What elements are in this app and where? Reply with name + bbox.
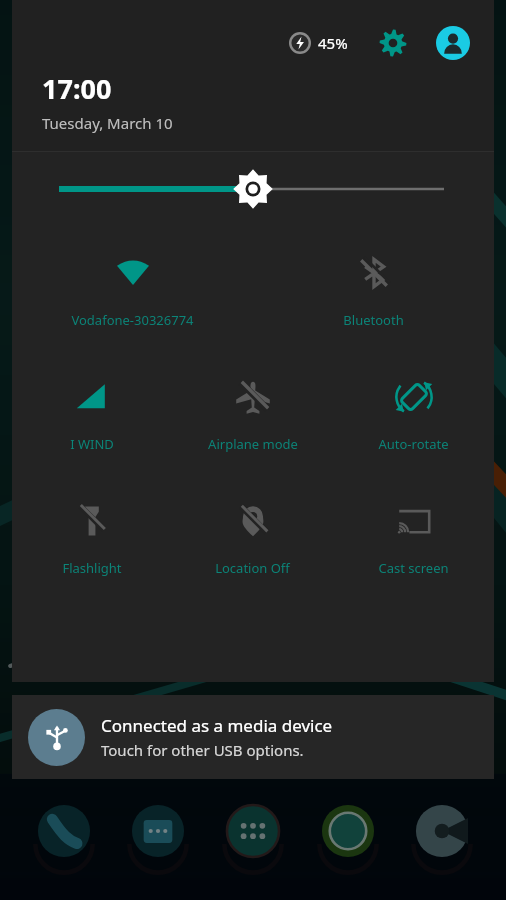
staticText: I WIND (70, 435, 114, 453)
button[interactable]: App 3 (317, 800, 379, 862)
staticText: Cast screen (378, 559, 449, 577)
staticText: Vodafone-30326774 (71, 311, 194, 329)
button[interactable]: Location Off (172, 473, 333, 597)
button[interactable]: Vodafone-30326774 (12, 225, 253, 349)
button[interactable]: Cast screen (333, 473, 494, 597)
button[interactable]: Connected as a media device (12, 695, 494, 779)
button[interactable]: Settings (374, 24, 412, 62)
staticText: Bluetooth (343, 311, 404, 329)
button[interactable]: Airplane mode (172, 349, 333, 473)
button[interactable]: App 0 (33, 800, 95, 862)
button[interactable]: Flashlight (12, 473, 172, 597)
staticText: Auto-rotate (378, 435, 449, 453)
staticText: Tuesday, March 10 (42, 113, 173, 133)
button[interactable]: I WIND (12, 349, 172, 473)
staticText: 17:00 (42, 70, 112, 107)
button[interactable]: User profile (434, 24, 472, 62)
button[interactable]: App 1 (127, 800, 189, 862)
button[interactable]: Auto-rotate (333, 349, 494, 473)
button[interactable]: App 2 (222, 800, 284, 862)
staticText: Flashlight (62, 559, 122, 577)
staticText: Airplane mode (208, 435, 298, 453)
button[interactable]: Bluetooth (253, 225, 494, 349)
staticText: Location Off (215, 559, 290, 577)
staticText: Touch for other USB options. (101, 740, 304, 760)
staticText: 45% (318, 33, 348, 53)
staticText: Connected as a media device (101, 714, 333, 737)
button[interactable]: App 4 (411, 800, 473, 862)
button[interactable]: Brightness (12, 169, 494, 209)
